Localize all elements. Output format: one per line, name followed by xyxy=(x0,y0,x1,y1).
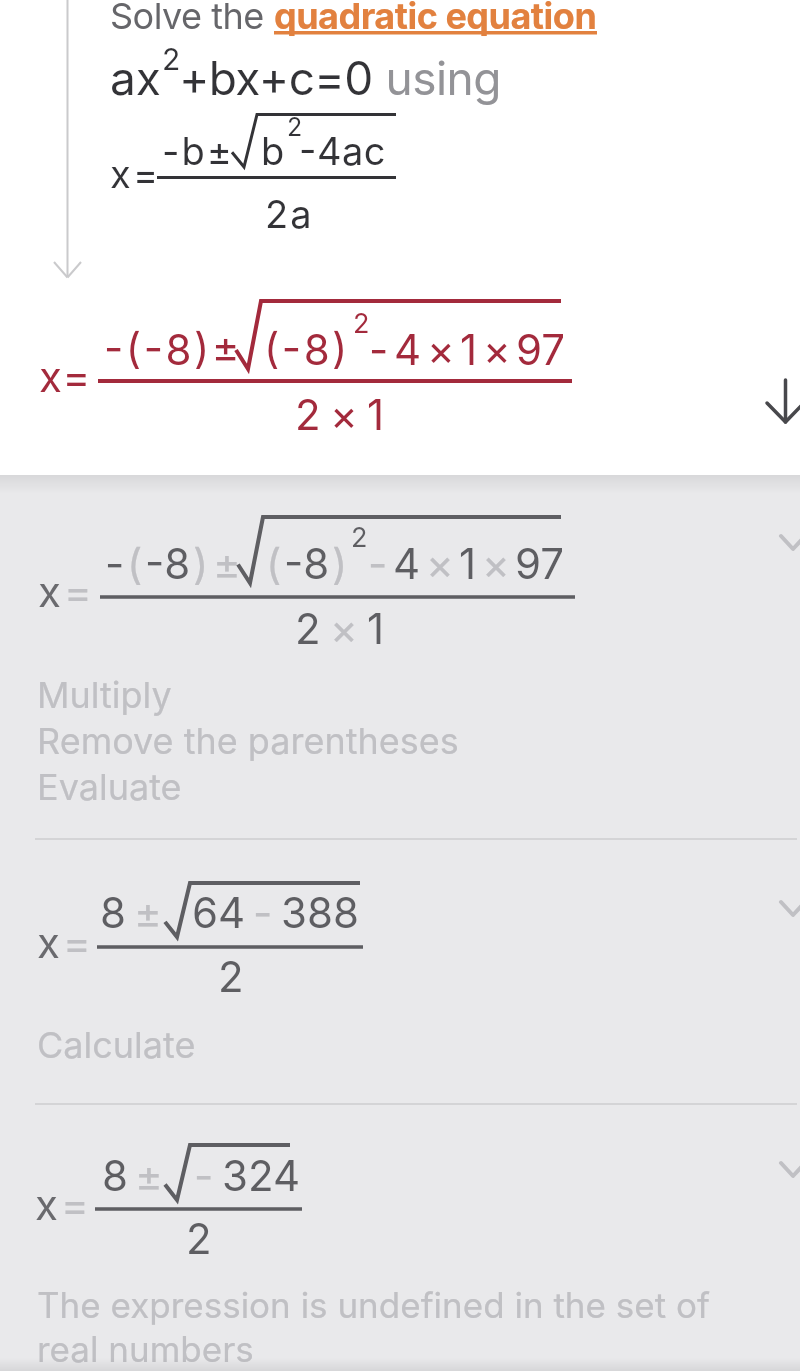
button[interactable] xyxy=(0,285,700,465)
button[interactable] xyxy=(0,841,800,1103)
button[interactable] xyxy=(265,0,610,40)
button[interactable] xyxy=(750,365,800,435)
button[interactable] xyxy=(0,476,800,838)
button[interactable] xyxy=(0,1106,800,1371)
